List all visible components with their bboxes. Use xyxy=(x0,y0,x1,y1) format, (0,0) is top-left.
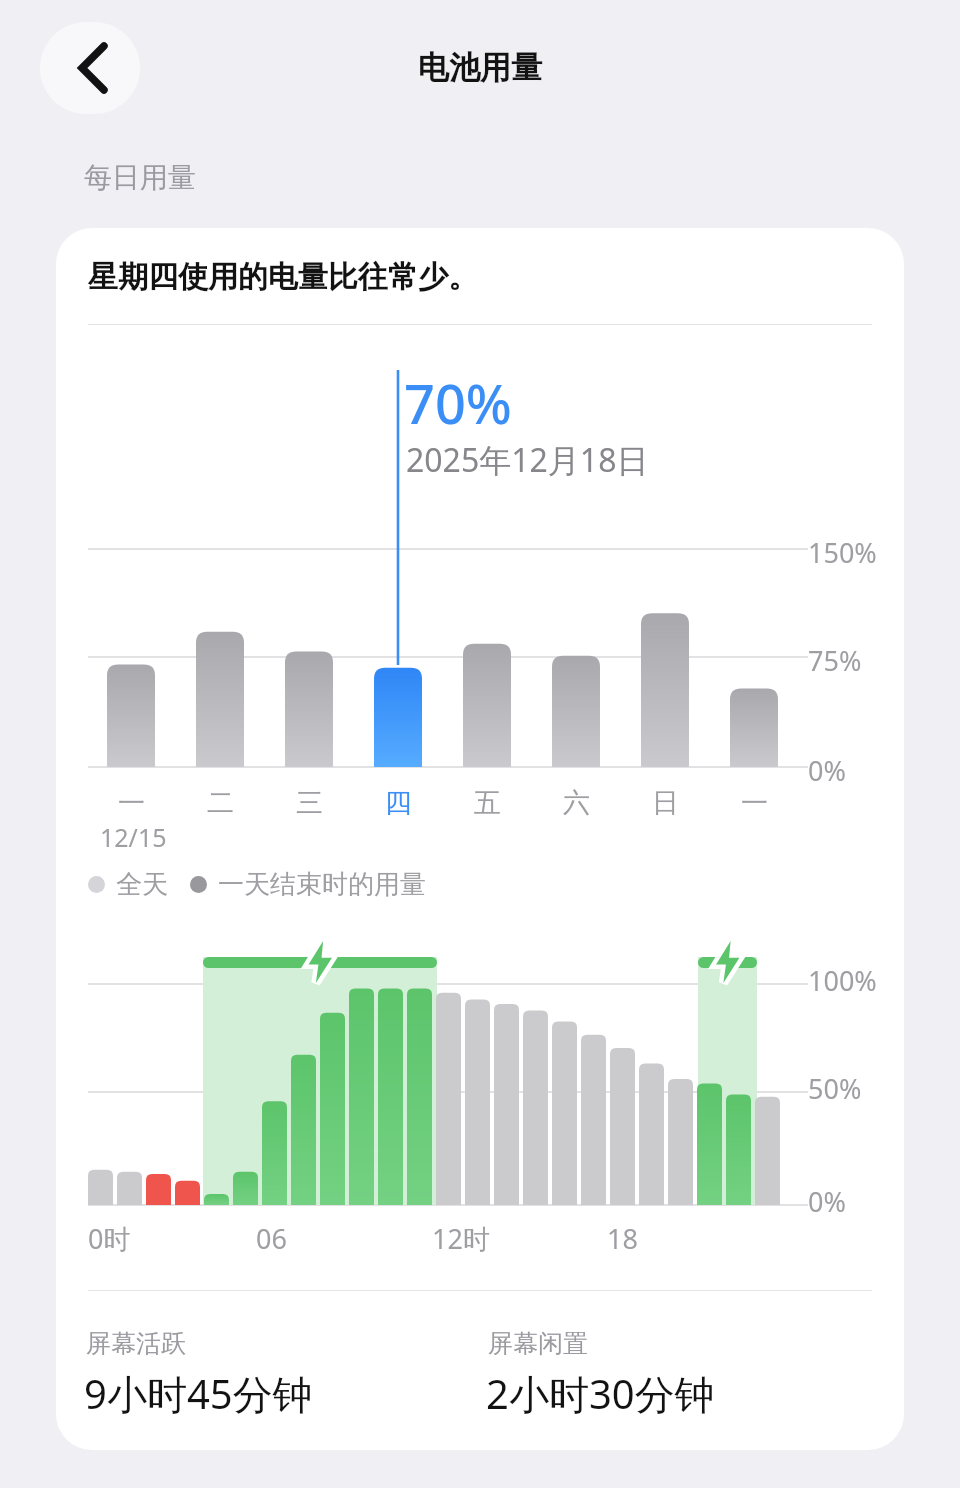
staticText: 每日用量 xyxy=(84,160,196,195)
staticText: 日 xyxy=(652,786,679,820)
staticText: 二 xyxy=(207,786,234,820)
staticText: 屏幕闲置 xyxy=(488,1328,588,1359)
staticText: 9小时45分钟 xyxy=(84,1366,313,1421)
button[interactable]: 全天 xyxy=(88,868,426,901)
staticText: 一天结束时的用量 xyxy=(218,868,426,901)
staticText: 50% xyxy=(808,1070,862,1107)
staticText: 75% xyxy=(808,642,862,679)
staticText: 12/15 xyxy=(100,820,167,854)
staticText: 五 xyxy=(474,786,501,820)
staticText: 70% xyxy=(404,366,512,440)
staticText: 电池用量 xyxy=(0,48,960,87)
staticText: 0% xyxy=(808,1183,846,1220)
staticText: 150% xyxy=(808,534,877,571)
staticText: 2小时30分钟 xyxy=(486,1366,715,1421)
staticText: 一 xyxy=(118,786,145,820)
staticText: 全天 xyxy=(116,868,168,901)
staticText: 0时 xyxy=(88,1220,131,1257)
staticText: 12时 xyxy=(432,1220,490,1257)
staticText: 2025年12月18日 xyxy=(406,438,649,482)
staticText: 0% xyxy=(808,752,846,789)
staticText: 18 xyxy=(607,1220,638,1257)
staticText: 06 xyxy=(256,1220,287,1257)
staticText: 一 xyxy=(741,786,768,820)
staticText: 三 xyxy=(296,786,323,820)
staticText: 四 xyxy=(385,786,412,820)
button[interactable]: Back xyxy=(40,22,140,114)
staticText: 六 xyxy=(563,786,590,820)
staticText: 屏幕活跃 xyxy=(86,1328,186,1359)
staticText: 100% xyxy=(808,962,877,999)
staticText: 星期四使用的电量比往常少。 xyxy=(88,258,478,296)
